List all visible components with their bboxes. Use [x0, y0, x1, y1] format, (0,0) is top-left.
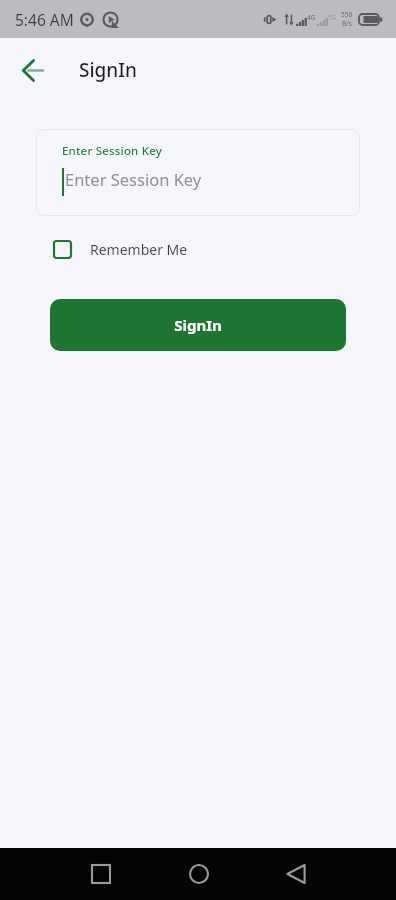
button[interactable]: Remember Me [53, 240, 188, 259]
staticText: 4G [307, 13, 316, 22]
button[interactable]: Back [247, 848, 345, 900]
staticText: SignIn [79, 57, 137, 83]
staticText: 550 [341, 10, 353, 19]
button[interactable]: Home [150, 848, 247, 900]
staticText: 5:46 AM [15, 9, 74, 30]
staticText: SignIn [174, 315, 222, 335]
staticText: Enter Session Key [62, 143, 163, 159]
staticText: Enter Session Key [65, 168, 202, 190]
staticText: B/s [342, 19, 352, 28]
staticText: 5G [328, 13, 337, 22]
button[interactable]: Enter Session Key [36, 129, 360, 216]
button[interactable]: Back [12, 50, 52, 90]
staticText: Remember Me [90, 240, 188, 259]
button[interactable]: SignIn [50, 299, 346, 351]
button[interactable]: Recents [52, 848, 150, 900]
